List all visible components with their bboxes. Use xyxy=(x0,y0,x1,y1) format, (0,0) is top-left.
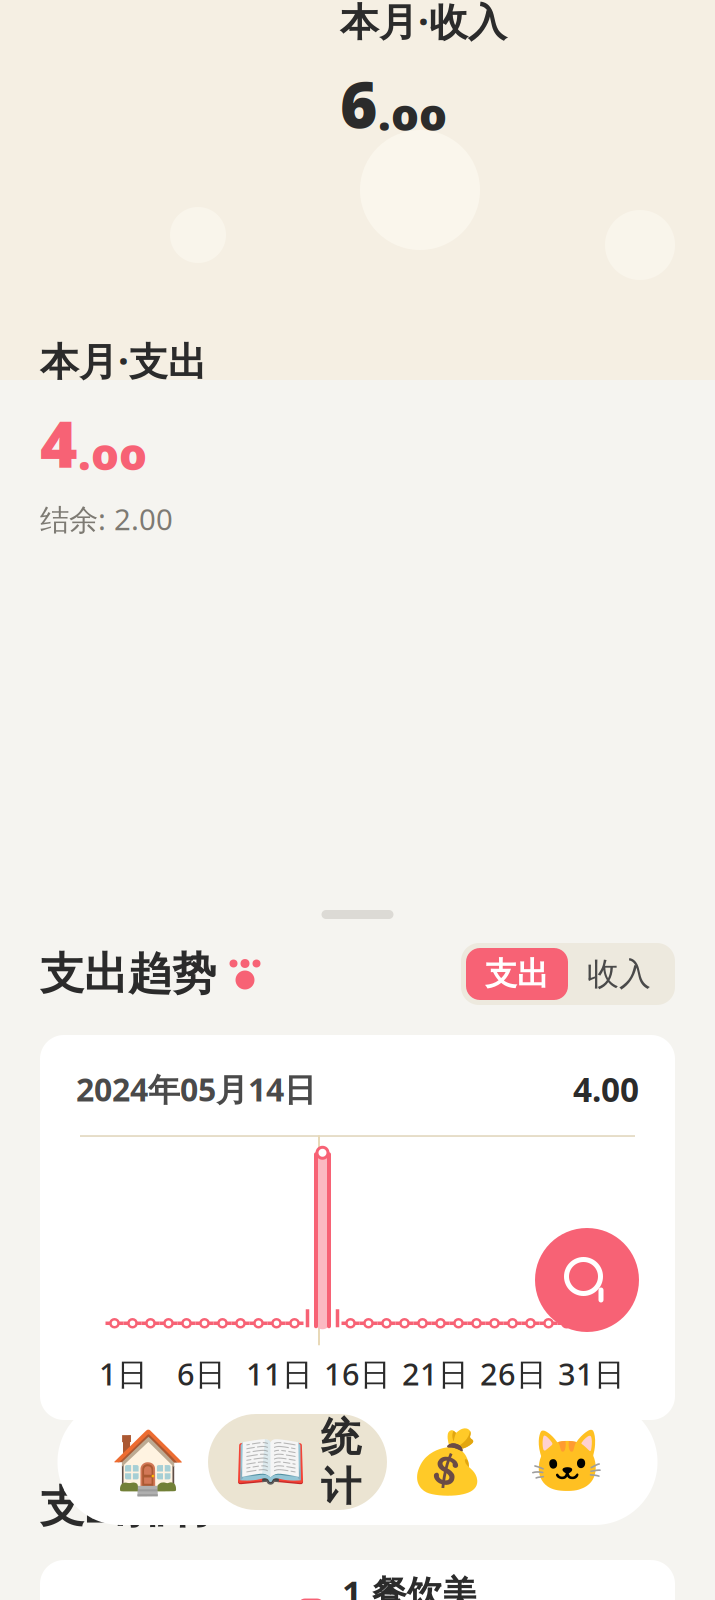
staticText: 📖 xyxy=(234,1428,307,1495)
staticText: 6 xyxy=(340,61,378,146)
staticText: 支出趋势 xyxy=(40,947,216,1001)
staticText: 本月·收入 xyxy=(340,0,507,47)
staticText: 收入 xyxy=(587,954,651,994)
staticText: 🏠 xyxy=(110,1427,186,1497)
button[interactable]: 我的 xyxy=(507,1414,627,1510)
staticText: 统计 xyxy=(321,1413,361,1511)
staticText: 🐱 xyxy=(529,1427,605,1497)
staticText: .oo xyxy=(378,84,447,143)
staticText: 💰 xyxy=(409,1427,485,1497)
staticText: 4.00 xyxy=(573,1067,639,1111)
staticText: 11日 xyxy=(246,1353,313,1394)
button[interactable]: 首页 xyxy=(88,1414,208,1510)
staticText: .oo xyxy=(78,424,147,482)
staticText: 26日 xyxy=(480,1353,547,1394)
staticText: 1.餐饮美食 xyxy=(342,1569,477,1600)
staticText: 支出 xyxy=(485,954,549,994)
staticText: 16日 xyxy=(324,1353,391,1394)
staticText: 2024年05月14日 xyxy=(76,1068,316,1110)
button[interactable]: 收入 xyxy=(568,948,670,1000)
staticText: 1日 xyxy=(99,1353,148,1394)
staticText: 结余: 2.00 xyxy=(40,499,173,538)
button[interactable]: 支出 xyxy=(466,948,568,1000)
button[interactable]: 📖 xyxy=(208,1414,387,1510)
staticText: 本月·支出 xyxy=(40,335,207,386)
staticText: 21日 xyxy=(402,1353,469,1394)
button[interactable]: 搜索 xyxy=(535,1228,639,1332)
staticText: 31日 xyxy=(558,1353,625,1394)
staticText: 支出排行 xyxy=(40,1480,216,1534)
staticText: 4 xyxy=(40,400,78,485)
staticText: 6日 xyxy=(177,1353,226,1394)
button[interactable]: 资产 xyxy=(387,1414,507,1510)
